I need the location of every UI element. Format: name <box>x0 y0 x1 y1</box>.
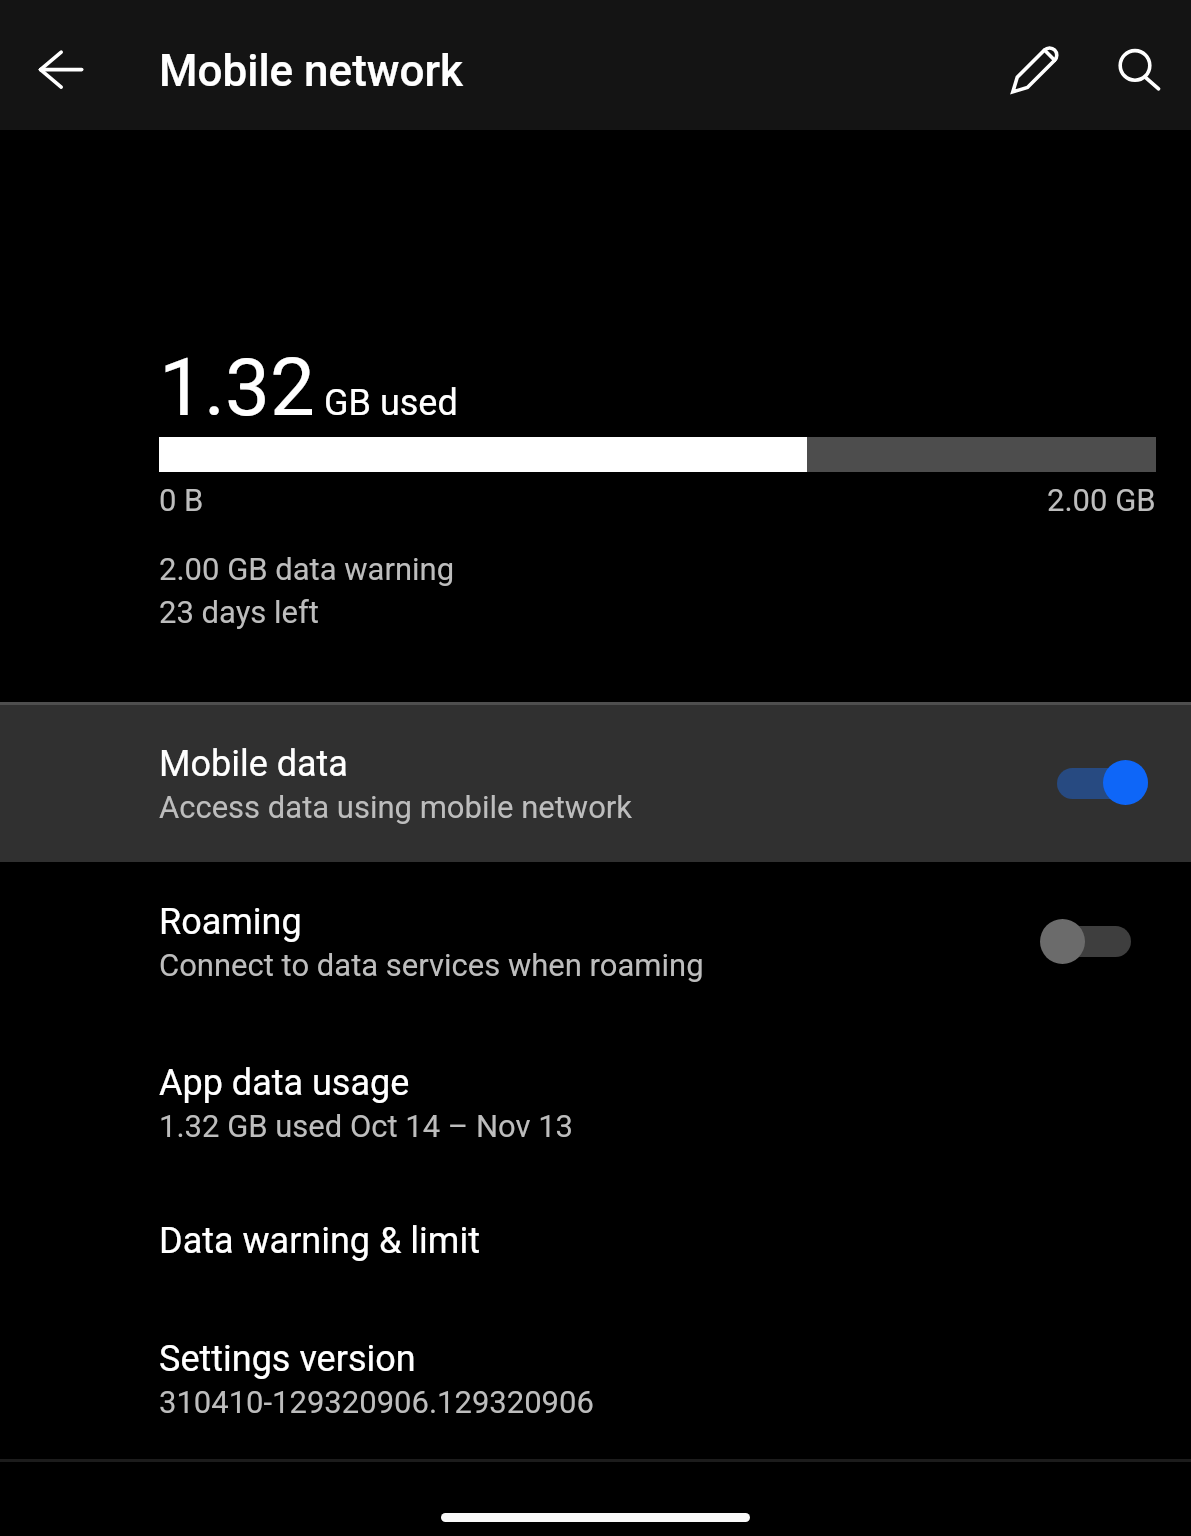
button[interactable]: Back <box>13 27 109 123</box>
button[interactable]: Search <box>1100 30 1180 110</box>
staticText: 1.32 GB used Oct 14 – Nov 13 <box>159 1108 574 1144</box>
staticText: GB used <box>324 382 458 424</box>
button[interactable]: Data warning & limit <box>0 1180 1191 1280</box>
staticText: Access data using mobile network <box>159 789 633 825</box>
staticText: Mobile data <box>159 743 348 785</box>
button[interactable]: App data usage <box>0 1020 1191 1160</box>
staticText: 1.32 <box>159 341 315 435</box>
staticText: 310410-129320906.129320906 <box>159 1384 594 1420</box>
button[interactable]: Roaming <box>0 880 1191 1020</box>
staticText: 2.00 GB <box>1047 482 1156 518</box>
staticText: Roaming <box>159 901 302 943</box>
staticText: 0 B <box>159 482 204 518</box>
button[interactable]: Settings version <box>0 1300 1191 1440</box>
staticText: 2.00 GB data warning <box>159 551 455 587</box>
staticText: Settings version <box>159 1338 416 1380</box>
staticText: Connect to data services when roaming <box>159 947 704 983</box>
staticText: Mobile network <box>159 45 463 97</box>
button[interactable]: Mobile data <box>0 702 1191 862</box>
staticText: Data warning & limit <box>159 1220 480 1262</box>
button[interactable]: Mobile data <box>1057 760 1149 806</box>
staticText: App data usage <box>159 1062 410 1104</box>
button[interactable]: Edit <box>992 32 1072 112</box>
button[interactable]: Roaming <box>1040 919 1132 965</box>
staticText: 23 days left <box>159 594 319 630</box>
